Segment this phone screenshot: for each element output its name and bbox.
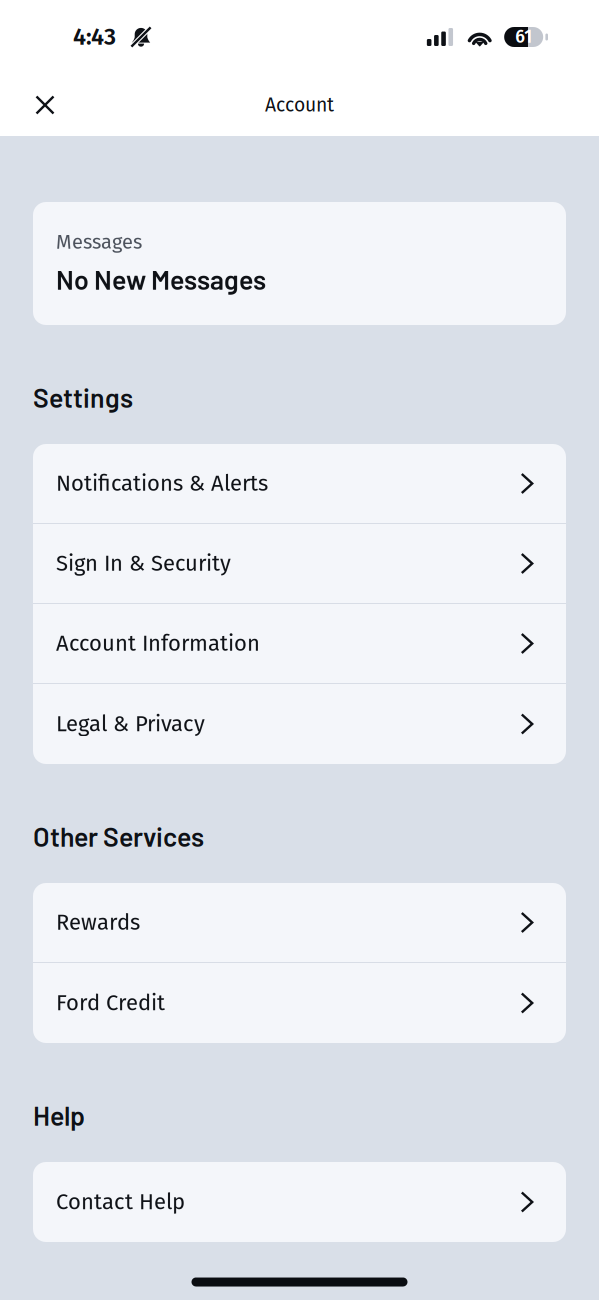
button[interactable]: Ford Credit bbox=[33, 963, 566, 1043]
button[interactable]: Rewards bbox=[33, 883, 566, 963]
button[interactable]: Account Information bbox=[33, 604, 566, 684]
button[interactable]: Sign In & Security bbox=[33, 524, 566, 604]
staticText: Account Information bbox=[56, 630, 260, 657]
button[interactable]: Notifications & Alerts bbox=[33, 444, 566, 524]
staticText: Messages bbox=[56, 230, 142, 254]
staticText: Rewards bbox=[56, 909, 140, 936]
staticText: Sign In & Security bbox=[56, 550, 231, 577]
staticText: 4:43 bbox=[73, 23, 116, 51]
staticText: Settings bbox=[33, 381, 133, 413]
staticText: No New Messages bbox=[56, 263, 266, 295]
staticText: Ford Credit bbox=[56, 990, 165, 1016]
button[interactable]: Close bbox=[0, 76, 76, 134]
staticText: Account bbox=[265, 93, 334, 117]
button[interactable]: Contact Help bbox=[33, 1162, 566, 1242]
button[interactable]: Legal & Privacy bbox=[33, 684, 566, 764]
staticText: Help bbox=[33, 1099, 85, 1131]
staticText: Contact Help bbox=[56, 1189, 185, 1215]
staticText: Notifications & Alerts bbox=[56, 470, 268, 497]
staticText: 61 bbox=[515, 27, 532, 47]
staticText: Legal & Privacy bbox=[56, 711, 205, 737]
staticText: Other Services bbox=[33, 820, 204, 852]
